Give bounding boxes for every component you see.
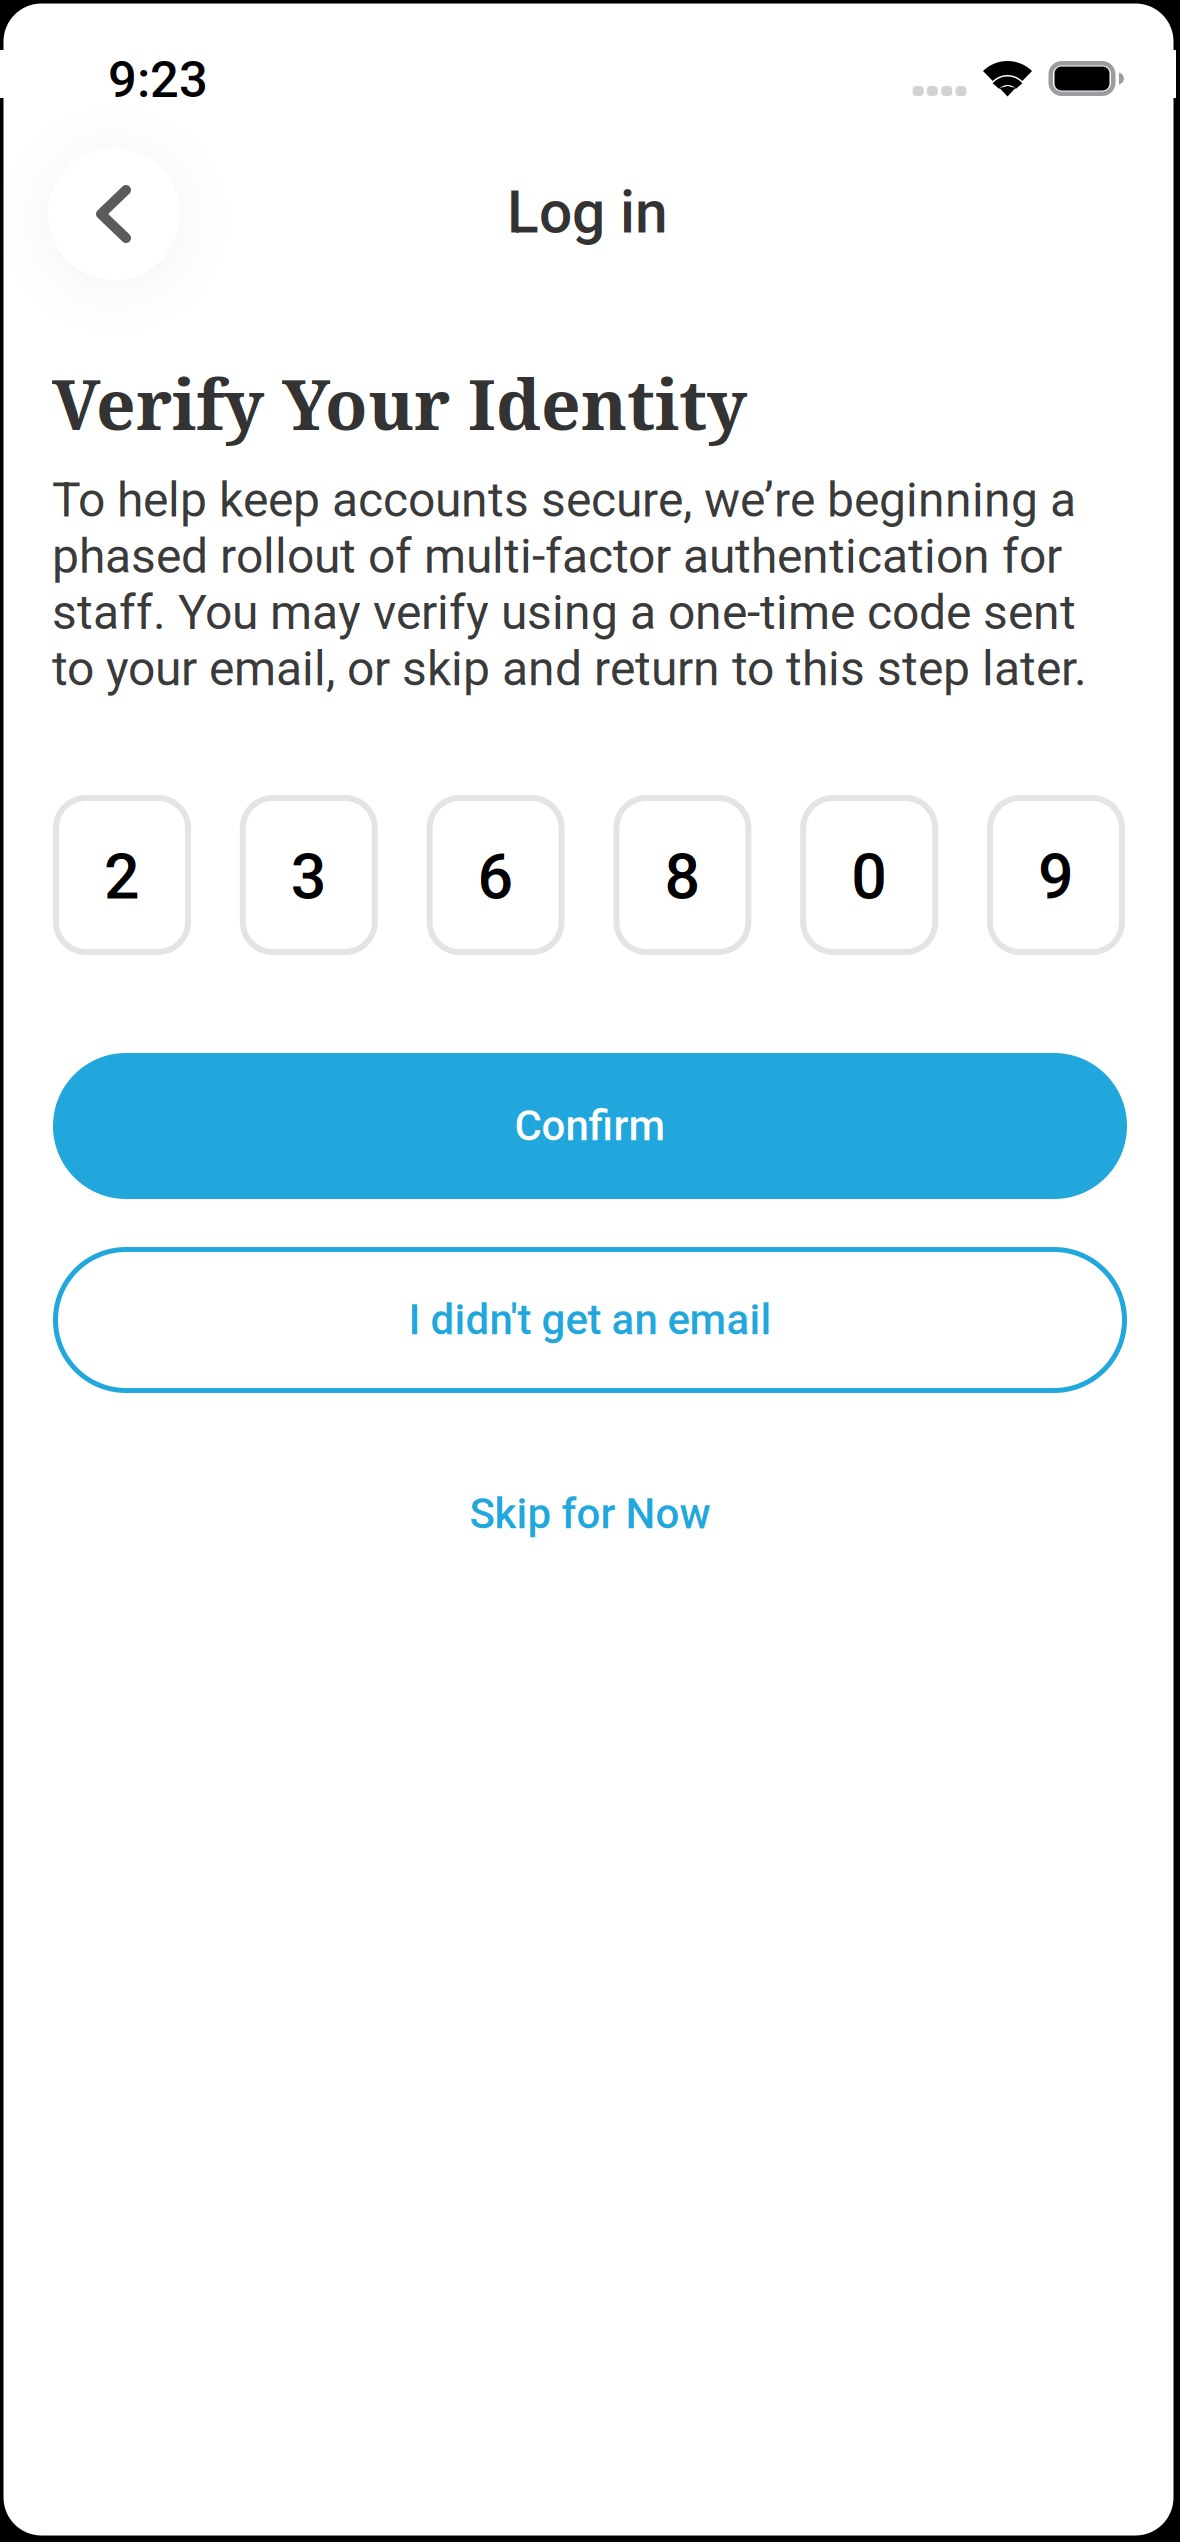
staticText: 8	[664, 840, 700, 914]
staticText: Skip for Now	[469, 1489, 710, 1539]
button[interactable]: Back	[48, 148, 180, 280]
staticText: Log in	[507, 178, 668, 247]
staticText: Confirm	[514, 1101, 665, 1151]
button[interactable]: I didn't get an email	[53, 1247, 1127, 1393]
button[interactable]: Skip for Now	[53, 1475, 1127, 1553]
staticText: 6	[478, 840, 514, 914]
staticText: I didn't get an email	[408, 1295, 771, 1345]
staticText: Verify Your Identity	[52, 356, 747, 450]
staticText: 9	[1038, 840, 1074, 914]
button[interactable]: Confirm	[53, 1053, 1127, 1199]
staticText: 2	[104, 840, 140, 914]
staticText: 3	[291, 840, 327, 914]
staticText: 0	[851, 840, 887, 914]
staticText: 9:23	[108, 50, 208, 109]
staticText: To help keep accounts secure, we’re begi…	[52, 472, 1087, 697]
